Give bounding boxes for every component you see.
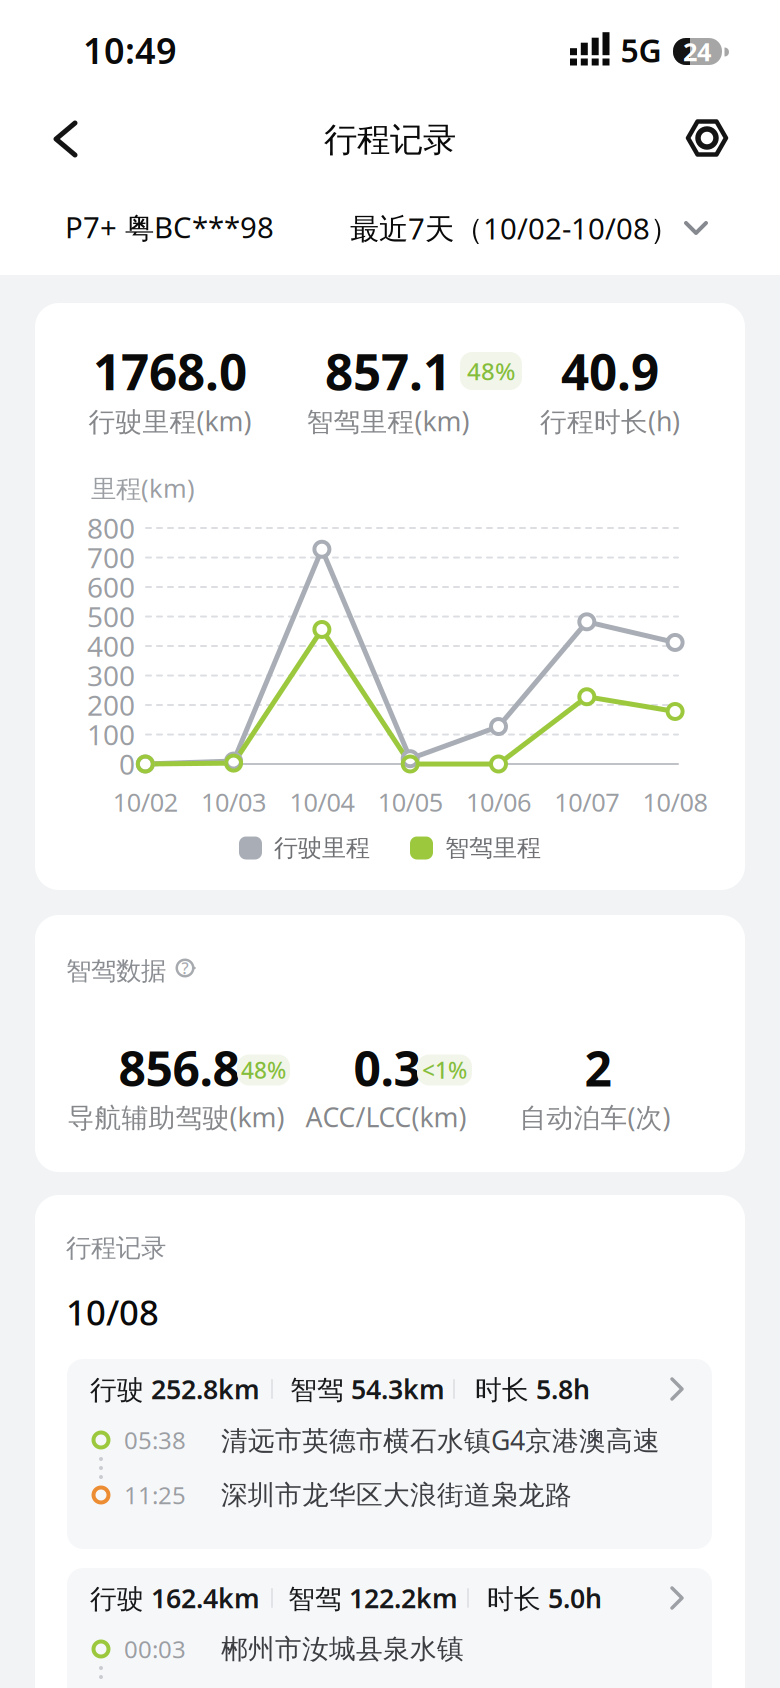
staticText: 郴州市汝城县泉水镇 [221,1633,464,1665]
staticText: 800 [87,509,135,547]
staticText: 深圳市龙华区大浪街道枭龙路 [221,1479,572,1511]
staticText: 2 [584,1036,611,1100]
staticText: 10:49 [83,26,177,74]
staticText: 时长 5.0h [487,1580,602,1616]
staticText: 行驶 162.4km [90,1580,260,1616]
staticText: 智驾里程 [445,833,541,863]
button[interactable]: Settings [679,110,735,166]
staticText: 10/03 [201,785,266,819]
staticText: 智驾 54.3km [290,1371,445,1407]
staticText: 1768.0 [93,338,247,404]
staticText: 400 [87,627,135,665]
staticText: 行驶里程(km) [88,403,251,439]
button[interactable]: 最近7天（10/02-10/08） [344,203,712,253]
staticText: 自动泊车(次) [519,1099,670,1135]
staticText: 行驶里程 [274,833,370,863]
staticText: 行程时长(h) [540,403,680,439]
staticText: 48% [241,1055,286,1085]
staticText: 10/07 [554,785,619,819]
staticText: 200 [87,686,135,724]
staticText: 智驾数据 [66,955,166,986]
staticText: 10/05 [378,785,443,819]
staticText: 500 [87,598,135,635]
staticText: 智驾 122.2km [288,1580,458,1616]
button[interactable]: Back [45,117,89,161]
button[interactable]: 行驶 252.8km [67,1359,712,1549]
staticText: 24 [683,35,711,68]
staticText: 05:38 [124,1424,186,1456]
staticText: 行驶 252.8km [90,1371,260,1407]
staticText: 40.9 [561,338,659,404]
staticText: 10/02 [113,785,178,819]
staticText: P7+ 粤BC***98 [65,207,274,246]
staticText: 10/08 [643,785,708,819]
staticText: 最近7天（10/02-10/08） [350,208,679,247]
button[interactable]: 行驶 162.4km [67,1568,712,1688]
staticText: 11:25 [124,1479,186,1511]
button[interactable]: Help [175,958,194,977]
staticText: 清远市英德市横石水镇G4京港澳高速 [221,1422,660,1458]
staticText: 600 [87,568,135,606]
staticText: ACC/LCC(km) [305,1099,466,1135]
button[interactable]: P7+ 粤BC***98 [65,207,365,246]
staticText: 00:03 [124,1633,186,1665]
staticText: 时长 5.8h [475,1371,590,1407]
staticText: 857.1 [325,338,451,404]
staticText: 5G [620,29,661,71]
staticText: 700 [87,539,135,576]
staticText: 行程记录 [66,1232,166,1263]
staticText: 10/06 [466,785,531,819]
staticText: 导航辅助驾驶(km) [67,1099,284,1135]
staticText: 10/08 [66,1289,159,1335]
staticText: 0.3 [353,1036,420,1100]
staticText: ? [181,957,188,979]
staticText: 300 [87,657,135,694]
staticText: 10/04 [289,785,354,819]
staticText: 里程(km) [91,471,195,505]
staticText: 856.8 [118,1036,239,1100]
staticText: 0 [119,745,135,783]
staticText: 行程记录 [324,119,456,160]
staticText: <1% [422,1055,467,1085]
staticText: 智驾里程(km) [306,403,469,439]
staticText: 48% [467,355,515,387]
staticText: 100 [87,716,135,753]
